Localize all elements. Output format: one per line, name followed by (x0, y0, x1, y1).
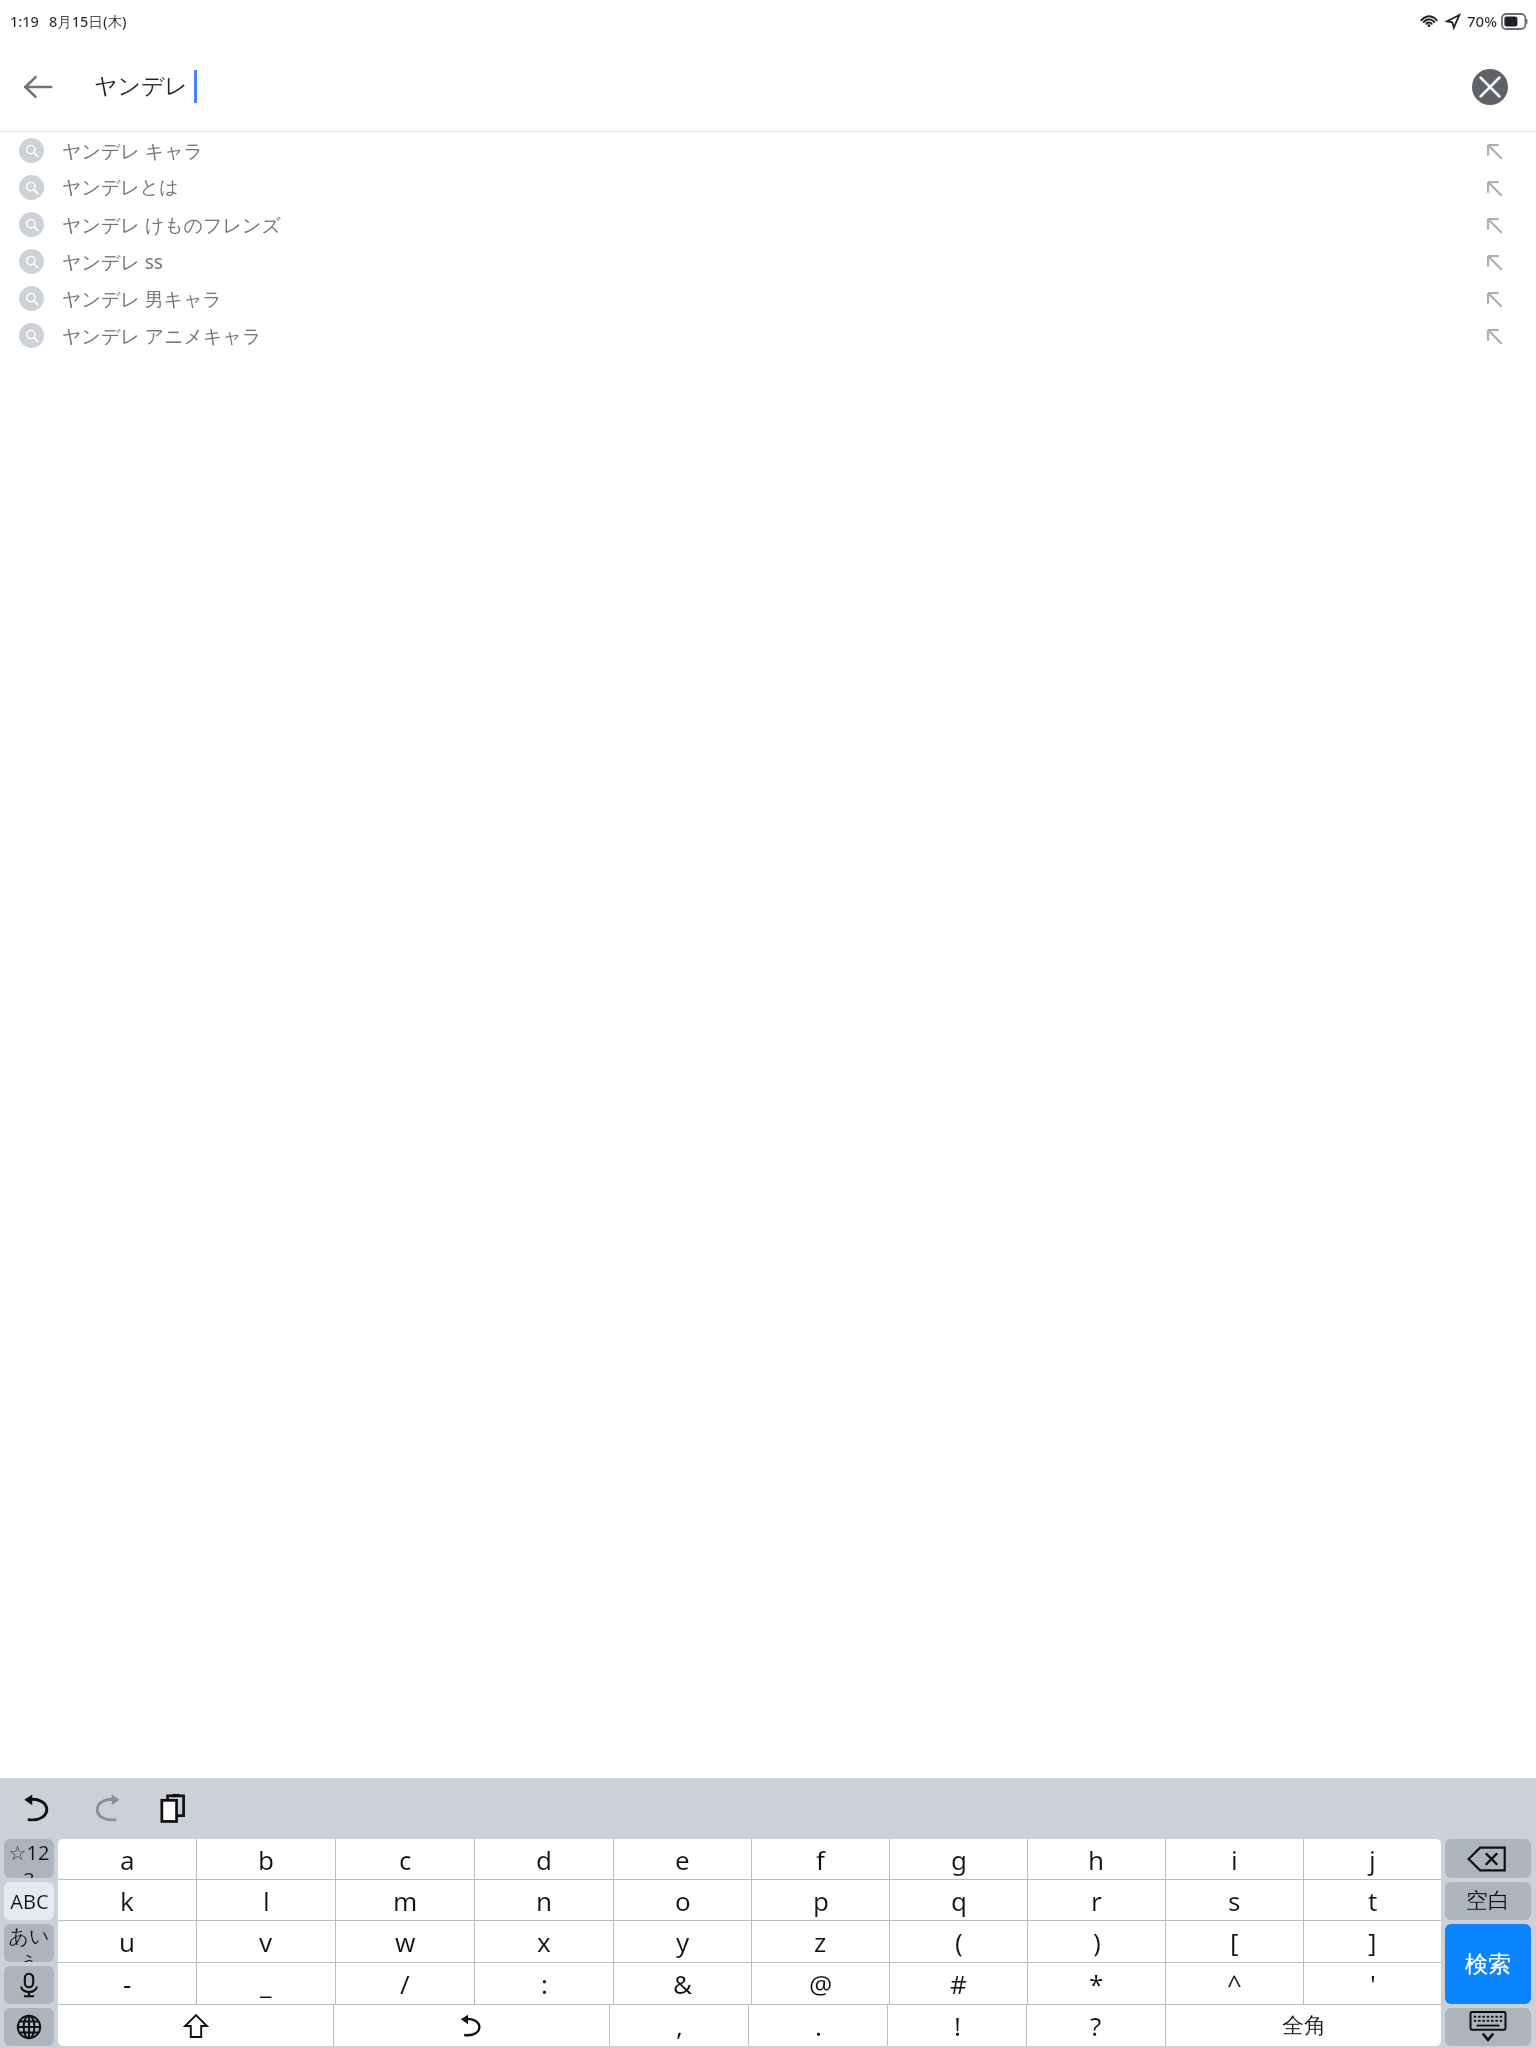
staticText: ( (955, 1924, 963, 1959)
button[interactable]: / (336, 1963, 474, 2004)
button[interactable]: o (614, 1880, 751, 1920)
button[interactable]: Undo (12, 1782, 64, 1834)
button[interactable]: ' (1304, 1963, 1441, 2004)
button[interactable]: g (890, 1839, 1027, 1879)
button[interactable]: 検索 (1445, 1924, 1531, 2004)
button[interactable]: Clear (1466, 63, 1514, 111)
staticText: 1:19 (10, 11, 39, 31)
button[interactable]: ヤンデレ ss (0, 243, 1536, 280)
staticText: b (258, 1842, 274, 1877)
staticText: c (399, 1842, 412, 1877)
button[interactable]: y (614, 1921, 751, 1962)
staticText: & (673, 1966, 693, 2001)
button[interactable]: Backspace (1445, 1839, 1531, 1878)
button[interactable]: * (1028, 1963, 1165, 2004)
button[interactable]: Shift (58, 2005, 333, 2046)
button[interactable]: f (752, 1839, 889, 1879)
button[interactable]: b (197, 1839, 335, 1879)
button[interactable]: h (1028, 1839, 1165, 1879)
button[interactable]: # (890, 1963, 1027, 2004)
button[interactable]: , (610, 2005, 748, 2046)
button[interactable]: Clipboard (148, 1782, 200, 1834)
staticText: ABC (10, 1888, 49, 1915)
button[interactable]: Hide keyboard (1445, 2008, 1531, 2046)
button[interactable]: Insert suggestion (1476, 207, 1512, 243)
staticText: ? (1090, 2008, 1102, 2043)
button[interactable]: Back (10, 59, 66, 115)
button[interactable]: z (752, 1921, 889, 1962)
button[interactable]: Insert suggestion (1476, 244, 1512, 280)
button[interactable]: ] (1304, 1921, 1441, 1962)
staticText: ) (1093, 1924, 1101, 1959)
staticText: [ (1230, 1924, 1239, 1959)
staticText: # (950, 1966, 967, 2001)
button[interactable]: k (58, 1880, 196, 1920)
button[interactable]: e (614, 1839, 751, 1879)
staticText: ヤンデレ 男キャラ (62, 286, 223, 312)
button[interactable]: Return (334, 2005, 609, 2046)
button[interactable]: Insert suggestion (1476, 170, 1512, 206)
staticText: i (1231, 1842, 1238, 1877)
button[interactable]: p (752, 1880, 889, 1920)
button[interactable]: i (1166, 1839, 1303, 1879)
staticText: _ (260, 1966, 272, 2001)
staticText: a (120, 1842, 135, 1877)
button[interactable]: ヤンデレ けものフレンズ (0, 206, 1536, 243)
button[interactable]: v (197, 1921, 335, 1962)
staticText: e (675, 1842, 690, 1877)
button[interactable]: 空白 (1445, 1882, 1531, 1920)
button[interactable]: Change language (4, 2008, 54, 2046)
button[interactable]: Insert suggestion (1476, 318, 1512, 354)
button[interactable]: Voice input (4, 1966, 54, 2004)
button[interactable]: d (475, 1839, 613, 1879)
button[interactable]: ヤンデレ アニメキャラ (0, 317, 1536, 354)
button[interactable]: [ (1166, 1921, 1303, 1962)
button[interactable]: あいう (4, 1924, 54, 1962)
button[interactable]: ヤンデレとは (0, 169, 1536, 206)
button[interactable]: Redo (80, 1782, 132, 1834)
button[interactable]: s (1166, 1880, 1303, 1920)
button[interactable]: n (475, 1880, 613, 1920)
button[interactable]: x (475, 1921, 613, 1962)
button[interactable]: a (58, 1839, 196, 1879)
button[interactable]: l (197, 1880, 335, 1920)
button[interactable]: & (614, 1963, 751, 2004)
staticText: h (1088, 1842, 1105, 1877)
button[interactable]: . (749, 2005, 887, 2046)
button[interactable]: c (336, 1839, 474, 1879)
staticText: ヤンデレとは (62, 176, 179, 200)
button[interactable]: Insert suggestion (1476, 281, 1512, 317)
button[interactable]: - (58, 1963, 196, 2004)
button[interactable]: ヤンデレ 男キャラ (0, 280, 1536, 317)
button[interactable]: ヤンデレ キャラ (0, 132, 1536, 169)
button[interactable]: ^ (1166, 1963, 1303, 2004)
staticText: ヤンデレ けものフレンズ (62, 212, 281, 238)
button[interactable]: ! (888, 2005, 1026, 2046)
button[interactable]: t (1304, 1880, 1441, 1920)
staticText: ヤンデレ キャラ (62, 138, 204, 164)
button[interactable]: r (1028, 1880, 1165, 1920)
button[interactable]: 全角 (1166, 2005, 1441, 2046)
button[interactable]: m (336, 1880, 474, 1920)
button[interactable]: q (890, 1880, 1027, 1920)
staticText: , (676, 2008, 683, 2043)
button[interactable]: j (1304, 1839, 1441, 1879)
button[interactable]: ( (890, 1921, 1027, 1962)
button[interactable]: u (58, 1921, 196, 1962)
button[interactable]: _ (197, 1963, 335, 2004)
button[interactable]: w (336, 1921, 474, 1962)
button[interactable]: ) (1028, 1921, 1165, 1962)
staticText: ヤンデレ ss (62, 249, 163, 275)
button[interactable]: : (475, 1963, 613, 2004)
button[interactable]: ? (1027, 2005, 1165, 2046)
staticText: ヤンデレ (94, 72, 189, 101)
button[interactable]: ABC (4, 1882, 54, 1920)
staticText: 全角 (1282, 2012, 1326, 2040)
staticText: o (675, 1883, 691, 1918)
button[interactable]: @ (752, 1963, 889, 2004)
staticText: ^ (1227, 1966, 1242, 2001)
staticText: u (119, 1924, 136, 1959)
button[interactable]: Insert suggestion (1476, 133, 1512, 169)
staticText: ' (1370, 1966, 1376, 2001)
button[interactable]: ☆123 (4, 1839, 54, 1878)
